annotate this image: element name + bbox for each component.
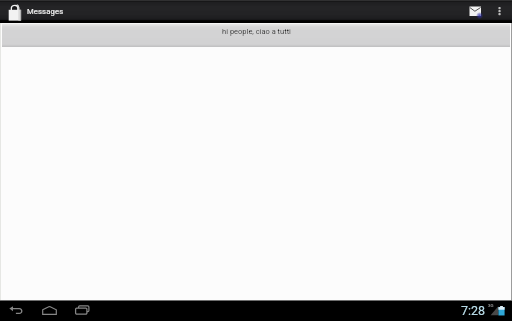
staticText: 7:28 [461,303,486,318]
button[interactable]: Compose message [462,0,488,23]
staticText: 3G [488,303,494,308]
staticText: Messages [27,7,64,16]
staticText: hi people, ciao a tutti [222,27,291,36]
button[interactable]: Home [33,300,66,321]
button[interactable]: More options [488,0,510,23]
button[interactable]: Back [0,300,33,321]
button[interactable]: Recent apps [66,300,99,321]
